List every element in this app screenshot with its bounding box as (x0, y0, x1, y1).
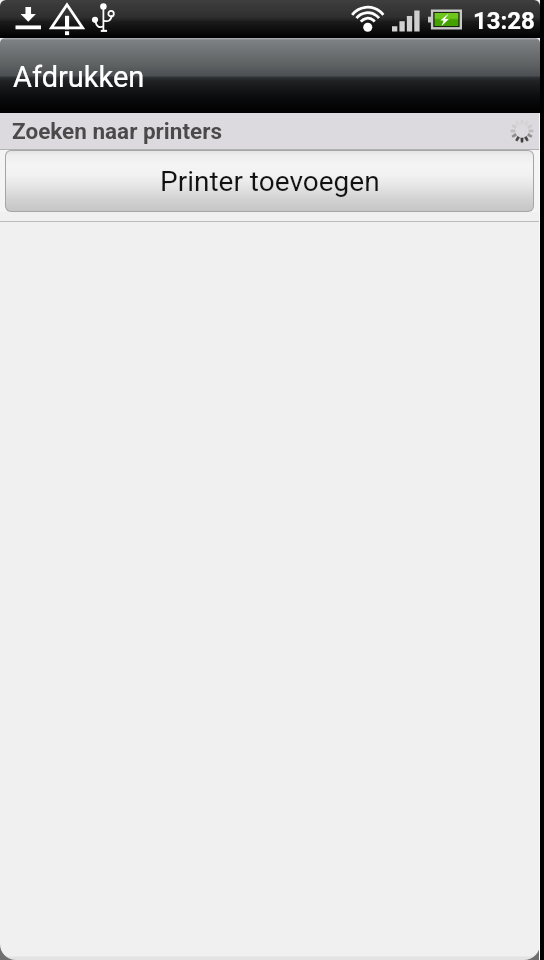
other: Searching for printers (510, 119, 534, 143)
staticText: Zoeken naar printers (12, 118, 222, 144)
staticText: Printer toevoegen (160, 165, 380, 198)
staticText: 13:28 (473, 7, 535, 35)
button[interactable]: Printer toevoegen (6, 151, 533, 211)
staticText: Afdrukken (13, 60, 145, 94)
